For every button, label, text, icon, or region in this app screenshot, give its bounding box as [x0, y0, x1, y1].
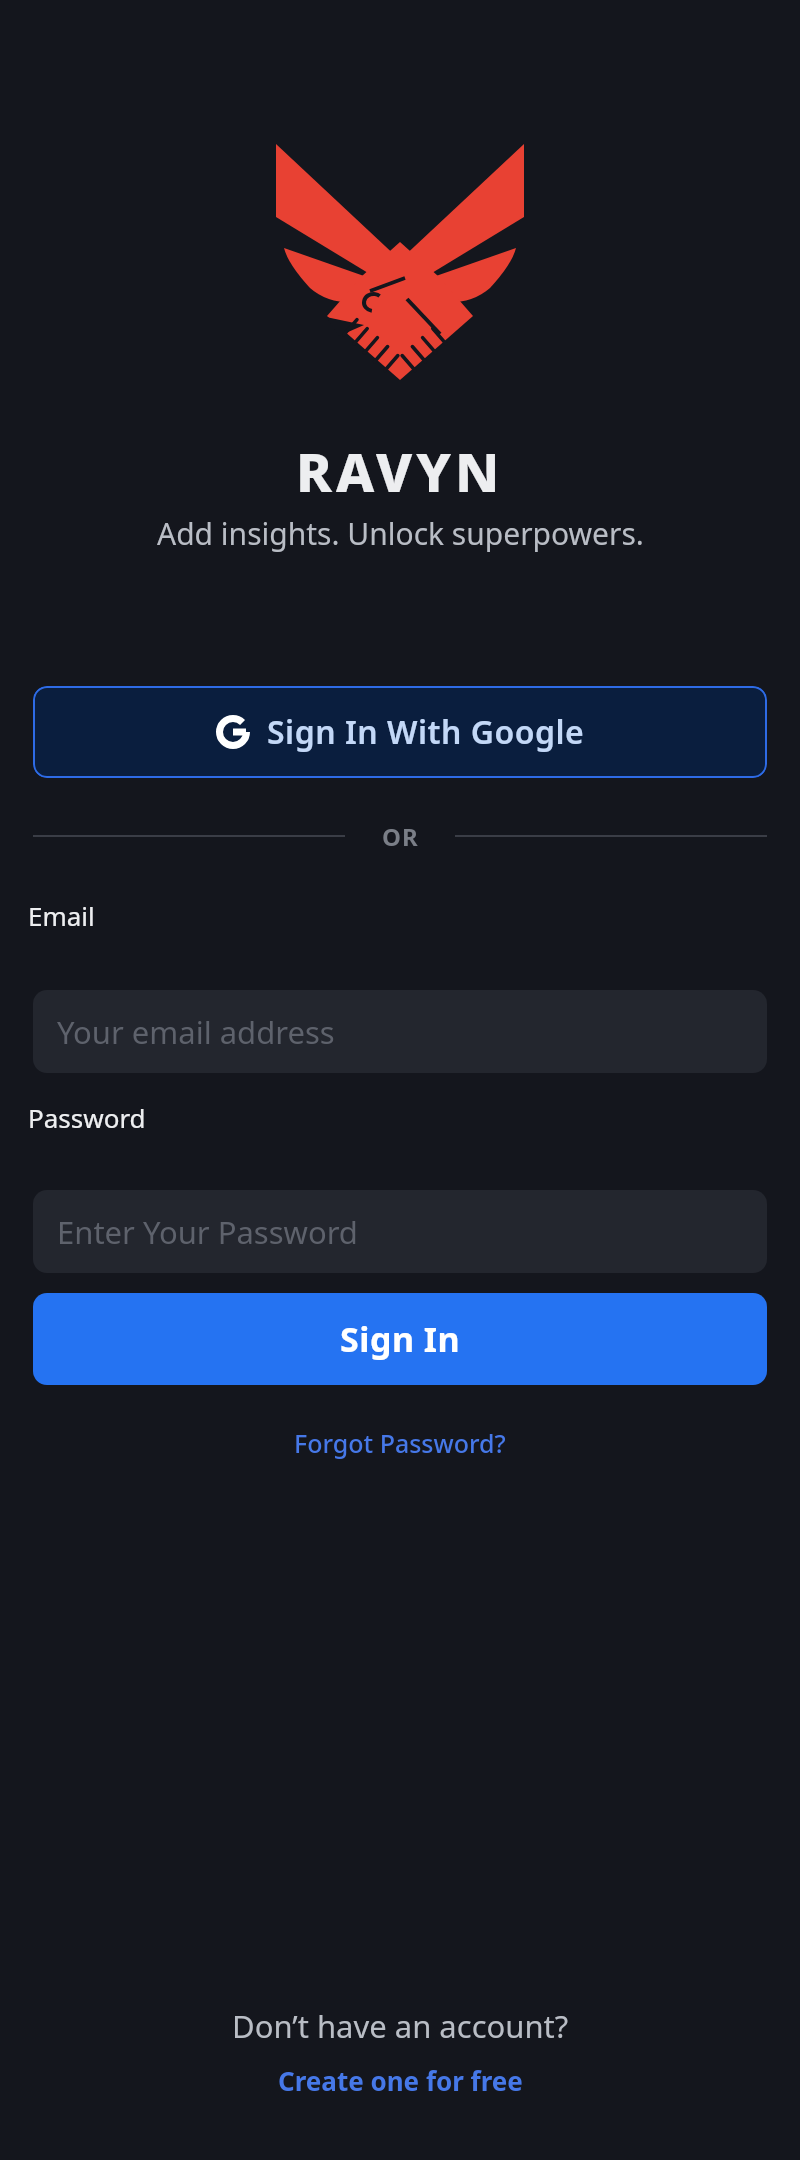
staticText: RAVYN: [296, 434, 504, 494]
staticText: Create one for free: [278, 2063, 523, 2098]
button[interactable]: Sign In With Google: [33, 686, 767, 778]
staticText: Sign In With Google: [267, 710, 585, 754]
staticText: Email: [28, 898, 95, 933]
button[interactable]: Sign In: [33, 1293, 767, 1385]
staticText: Enter Your Password: [57, 1211, 358, 1253]
staticText: Sign In: [340, 1316, 461, 1362]
staticText: Don’t have an account?: [232, 2005, 569, 2047]
button[interactable]: Enter Your Password: [33, 1190, 767, 1273]
staticText: Password: [28, 1100, 146, 1135]
button[interactable]: Forgot Password?: [294, 1426, 506, 1460]
staticText: OR: [382, 820, 419, 853]
staticText: Add insights. Unlock superpowers.: [157, 513, 644, 553]
button[interactable]: Create one for free: [278, 2063, 523, 2098]
staticText: Forgot Password?: [294, 1426, 506, 1460]
staticText: Your email address: [57, 1011, 335, 1053]
button[interactable]: Your email address: [33, 990, 767, 1073]
